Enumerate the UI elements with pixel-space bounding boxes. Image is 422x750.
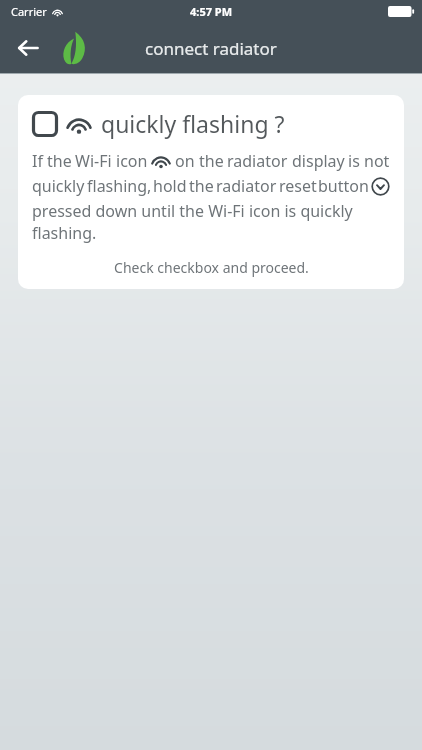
staticText: quickly flashing ? [101,108,285,139]
staticText: radiator [216,175,277,197]
staticText: not [364,150,390,172]
button[interactable]: quickly flashing ? [18,95,404,289]
staticText: the [47,150,72,172]
staticText: display [292,150,345,172]
staticText: button [318,175,369,197]
staticText: hold [153,175,187,197]
staticText: flashing, [87,175,152,197]
staticText: pressed down until the Wi-Fi icon is qui… [32,200,390,244]
staticText: the [189,175,214,197]
staticText: radiator [227,150,288,172]
staticText: Check checkbox and proceed. [114,258,309,277]
button[interactable]: Back [8,28,48,68]
staticText: Carrier [11,4,47,19]
staticText: quickly [32,175,85,197]
staticText: Wi-Fi [75,150,112,172]
staticText: If [32,150,43,172]
staticText: is [348,150,360,172]
staticText: reset [279,175,317,197]
staticText: connect radiator [145,37,277,60]
staticText: icon [116,150,148,172]
staticText: 4:57 PM [190,4,233,19]
staticText: the [199,150,224,172]
staticText: on [175,150,195,172]
